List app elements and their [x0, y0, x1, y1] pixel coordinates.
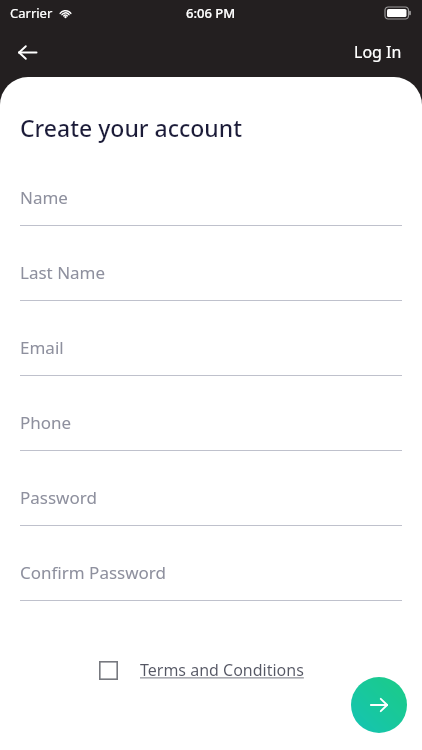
staticText: Email — [20, 336, 64, 359]
button[interactable]: Terms and Conditions — [99, 659, 304, 681]
staticText: 6:06 PM — [186, 4, 236, 22]
staticText: Create your account — [20, 112, 242, 143]
staticText: Last Name — [20, 261, 106, 284]
staticText: Password — [20, 486, 97, 509]
button[interactable]: Confirm Password — [0, 550, 422, 625]
button[interactable]: Phone — [0, 400, 422, 475]
button[interactable]: Name — [0, 175, 422, 250]
staticText: Phone — [20, 411, 72, 434]
button[interactable]: Password — [0, 475, 422, 550]
staticText: Carrier — [10, 4, 53, 22]
staticText: Terms and Conditions — [140, 659, 304, 681]
button[interactable]: Email — [0, 325, 422, 400]
staticText: Log In — [354, 41, 402, 63]
button[interactable]: Back — [6, 31, 48, 73]
button[interactable]: Continue — [351, 677, 407, 733]
staticText: Confirm Password — [20, 561, 166, 584]
button[interactable]: Log In — [348, 35, 408, 69]
staticText: Name — [20, 186, 68, 209]
button[interactable]: Last Name — [0, 250, 422, 325]
